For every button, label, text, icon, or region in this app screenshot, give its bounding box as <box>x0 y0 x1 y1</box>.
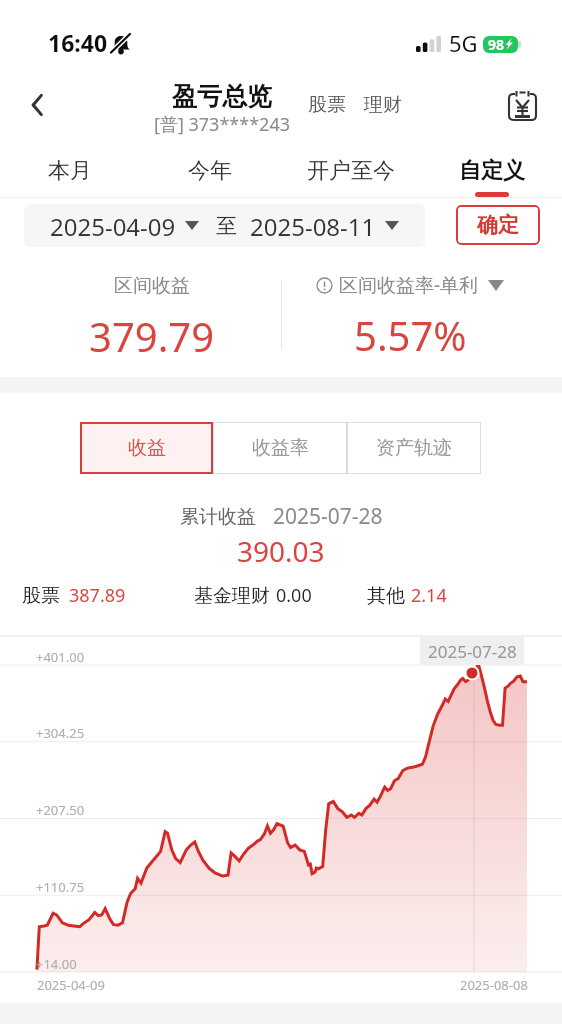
button[interactable]: 股票 <box>305 89 349 121</box>
staticText: 区间收益 <box>114 274 190 298</box>
button[interactable]: 确定 <box>456 205 540 245</box>
button[interactable]: 2025-08-11 <box>250 204 399 247</box>
staticText: 本月 <box>48 157 92 185</box>
staticText: 确定 <box>477 212 519 238</box>
staticText: 2025-08-11 <box>250 210 376 241</box>
staticText: 98 <box>488 36 505 52</box>
button[interactable]: 理财 <box>361 89 405 121</box>
staticText: 390.03 <box>237 532 325 570</box>
staticText: 股票 <box>22 584 60 608</box>
staticText: +110.75 <box>36 878 85 896</box>
staticText: +207.50 <box>36 801 85 819</box>
button[interactable]: 区间收益率-单利 <box>316 272 504 298</box>
staticText: 至 <box>216 213 237 239</box>
staticText: 2025-07-28 <box>428 640 517 663</box>
staticText: 16:40 <box>48 27 108 58</box>
staticText: 收益 <box>128 436 166 460</box>
staticText: [普] 373****243 <box>154 112 290 137</box>
staticText: 区间收益率-单利 <box>339 272 479 298</box>
button[interactable]: 收益率 <box>213 422 347 474</box>
staticText: +14.00 <box>36 955 77 973</box>
staticText: 0.00 <box>276 583 312 608</box>
button[interactable]: Back <box>14 81 62 129</box>
staticText: 5G <box>449 28 478 58</box>
staticText: 收益率 <box>252 436 309 460</box>
staticText: 2.14 <box>411 583 447 608</box>
staticText: 开户至今 <box>307 157 395 185</box>
staticText: 2025-04-09 <box>37 976 105 994</box>
button[interactable]: 收益 <box>80 422 213 474</box>
staticText: 累计收益 <box>180 505 256 529</box>
button[interactable]: 自定义 <box>421 140 562 198</box>
staticText: 2025-07-28 <box>273 502 383 531</box>
staticText: 2025-04-09 <box>50 210 176 241</box>
staticText: 基金理财 <box>194 584 270 608</box>
staticText: 5.57% <box>354 308 467 362</box>
staticText: 379.79 <box>89 309 215 363</box>
button[interactable]: 2025-04-09 <box>50 204 199 247</box>
staticText: 今年 <box>188 157 232 185</box>
staticText: +304.25 <box>36 724 85 742</box>
button[interactable]: 本月 <box>0 140 140 198</box>
button[interactable]: Bills <box>495 78 550 128</box>
staticText: +401.00 <box>36 648 85 666</box>
staticText: 其他 <box>367 584 405 608</box>
button[interactable]: 资产轨迹 <box>347 422 481 474</box>
staticText: 387.89 <box>69 583 126 608</box>
staticText: 自定义 <box>459 157 525 185</box>
staticText: 盈亏总览 <box>172 81 272 112</box>
button[interactable]: 开户至今 <box>280 140 421 198</box>
staticText: 股票 <box>308 93 346 117</box>
staticText: 2025-08-08 <box>460 976 528 994</box>
button[interactable]: 今年 <box>140 140 280 198</box>
staticText: 资产轨迹 <box>376 436 452 460</box>
staticText: 理财 <box>364 93 402 117</box>
